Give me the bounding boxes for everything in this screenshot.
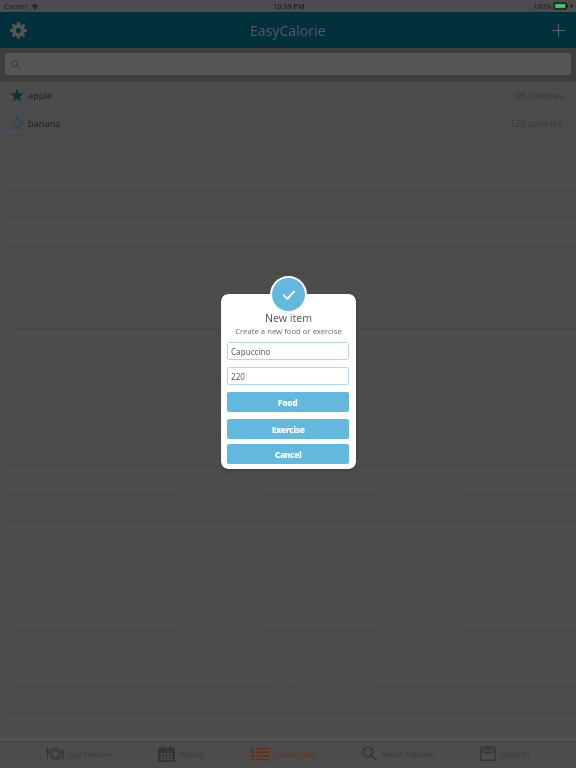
staticText: 10:39 PM	[273, 1, 305, 11]
staticText: Create a new food or exercise	[221, 326, 356, 336]
button[interactable]: Add	[540, 12, 576, 48]
button[interactable]: Calories List	[251, 739, 316, 768]
button[interactable]: 220	[227, 367, 349, 385]
button[interactable]: Food	[227, 392, 349, 412]
staticText: Check In	[500, 749, 530, 759]
button[interactable]: banana	[0, 110, 576, 137]
button[interactable]: Cancel	[227, 444, 349, 464]
staticText: Carrier	[4, 1, 28, 11]
button[interactable]: Search Calories	[362, 739, 434, 768]
staticText: 120 calories	[510, 117, 563, 130]
staticText: EasyCalorie	[250, 21, 326, 40]
staticText: 95 calories	[516, 89, 563, 102]
button[interactable]: apple	[0, 82, 576, 109]
staticText: 100%	[533, 1, 552, 11]
staticText: Capuccino	[231, 346, 271, 357]
staticText: Food	[278, 397, 298, 408]
button[interactable]: Confirm	[272, 278, 305, 311]
staticText: History	[179, 749, 204, 759]
staticText: banana	[28, 117, 61, 130]
staticText: New item	[221, 311, 356, 325]
button[interactable]: History	[158, 739, 204, 768]
staticText: Calories List	[274, 749, 316, 759]
staticText: apple	[28, 89, 53, 102]
staticText: Cancel	[275, 449, 302, 460]
button[interactable]: Log Calories	[46, 739, 112, 768]
button[interactable]: Check In	[480, 739, 530, 768]
staticText: 220	[231, 371, 245, 382]
button[interactable]: Capuccino	[227, 342, 349, 360]
staticText: Log Calories	[69, 749, 112, 759]
staticText: Exercise	[272, 424, 305, 435]
button[interactable]: Exercise	[227, 419, 349, 439]
button[interactable]: Settings	[0, 12, 36, 48]
staticText: Search Calories	[381, 749, 434, 759]
